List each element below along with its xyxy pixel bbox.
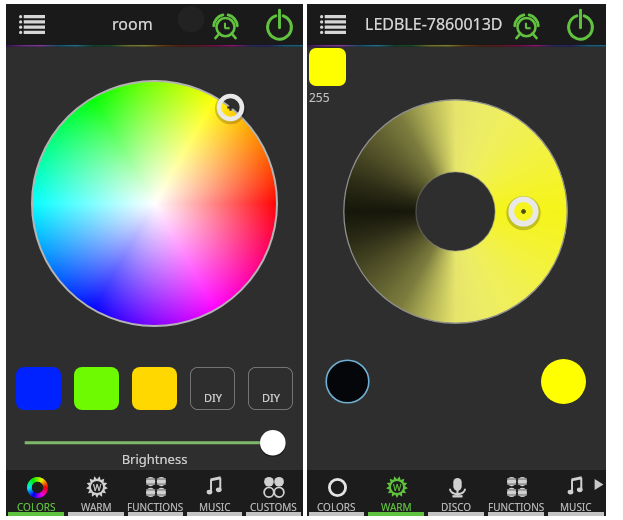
button[interactable]: COLORS <box>6 470 66 516</box>
staticText: WARM <box>381 500 412 514</box>
button[interactable] <box>309 48 346 86</box>
button[interactable]: COLORS <box>307 470 366 516</box>
staticText: W <box>93 481 102 493</box>
staticText: MUSIC <box>199 500 231 514</box>
button[interactable]: DIY <box>248 367 293 410</box>
staticText: COLORS <box>17 500 56 514</box>
staticText: MUSIC <box>560 500 592 514</box>
button[interactable]: Menu <box>313 4 353 44</box>
button[interactable]: W <box>366 470 426 516</box>
button[interactable]: Timer <box>507 4 545 44</box>
button[interactable]: Power <box>561 4 599 44</box>
staticText: LEDBLE-7860013D <box>365 13 503 35</box>
button[interactable]: FUNCTIONS <box>486 470 546 516</box>
other: More <box>593 479 604 490</box>
button[interactable]: W <box>66 470 126 516</box>
staticText: DISCO <box>441 500 472 514</box>
button[interactable]: MUSIC <box>185 470 244 516</box>
button[interactable]: DIY <box>190 367 235 410</box>
staticText: CUSTOMS <box>250 500 297 514</box>
button[interactable]: DISCO <box>426 470 486 516</box>
staticText: Brightness <box>6 450 303 468</box>
button[interactable]: Menu <box>12 4 52 44</box>
staticText: W <box>393 481 402 493</box>
staticText: DIY <box>204 390 222 405</box>
staticText: FUNCTIONS <box>127 500 184 514</box>
staticText: DIY <box>262 390 280 405</box>
staticText: room <box>112 13 153 35</box>
button[interactable]: Timer <box>206 4 244 44</box>
button[interactable]: FUNCTIONS <box>126 470 185 516</box>
button[interactable] <box>16 367 61 410</box>
staticText: COLORS <box>317 500 356 514</box>
button[interactable] <box>132 367 177 410</box>
staticText: FUNCTIONS <box>488 500 545 514</box>
button[interactable]: CUSTOMS <box>244 470 303 516</box>
button[interactable] <box>74 367 119 410</box>
button[interactable]: Power <box>260 4 298 44</box>
staticText: WARM <box>81 500 112 514</box>
button[interactable]: MUSIC <box>546 470 606 516</box>
staticText: 255 <box>309 89 330 105</box>
